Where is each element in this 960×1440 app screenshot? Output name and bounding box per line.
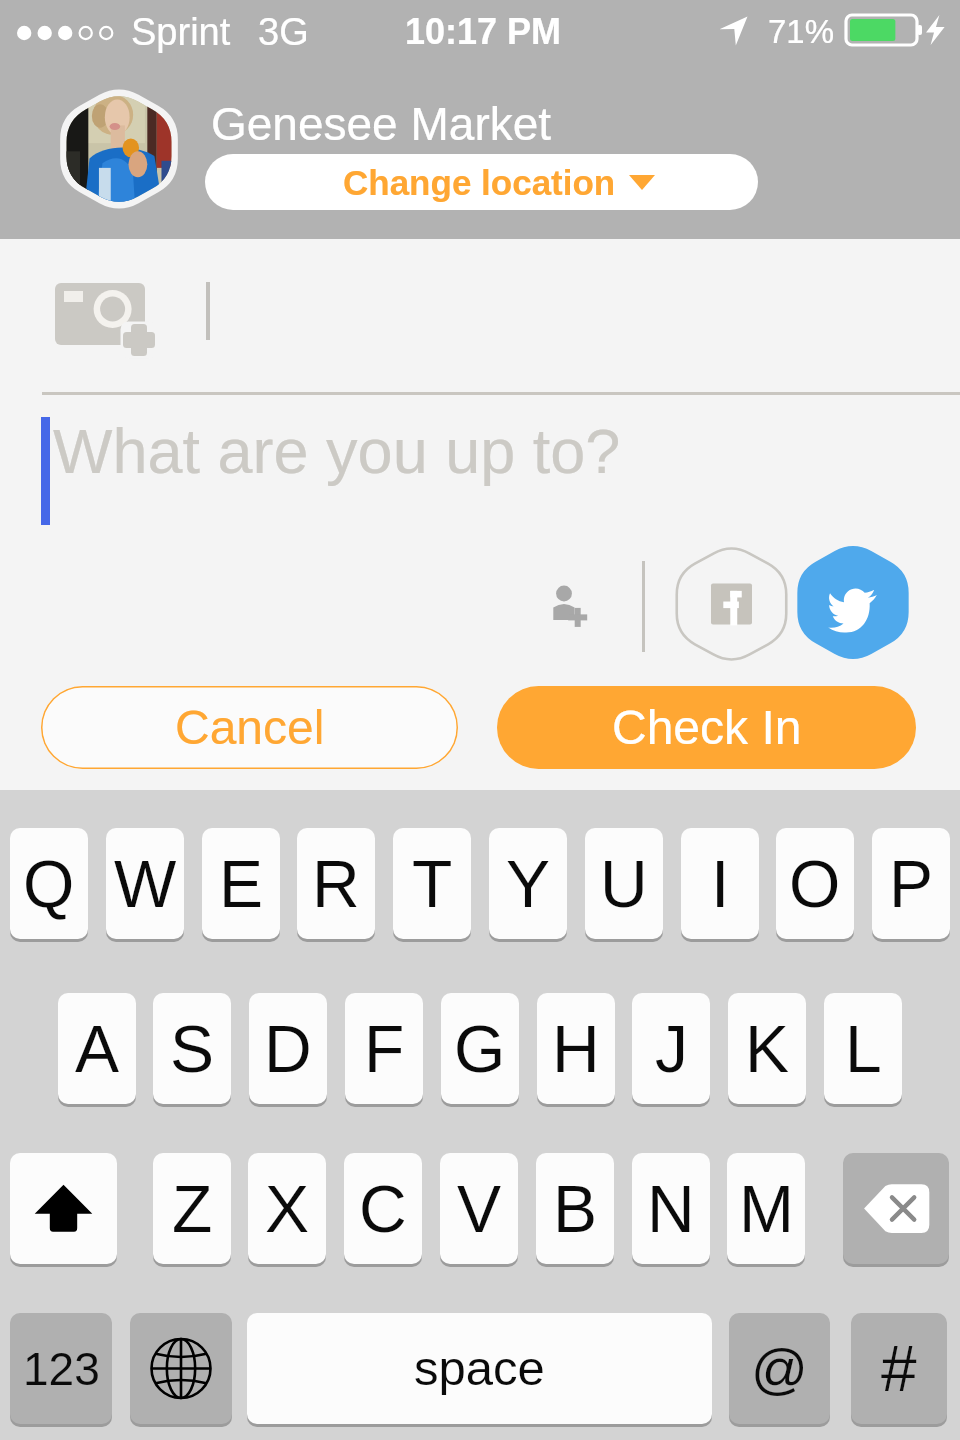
staticText: 10:17 PM: [405, 11, 562, 51]
staticText: D: [264, 1012, 312, 1086]
staticText: T: [412, 847, 453, 921]
button[interactable]: B: [536, 1153, 614, 1264]
staticText: L: [845, 1012, 882, 1086]
staticText: I: [711, 847, 730, 921]
staticText: Cancel: [175, 701, 325, 755]
staticText: P: [889, 847, 934, 921]
button[interactable]: K: [728, 993, 806, 1104]
button[interactable]: R: [297, 828, 375, 939]
button[interactable]: G: [441, 993, 519, 1104]
button[interactable]: X: [248, 1153, 326, 1264]
button[interactable]: space: [247, 1313, 712, 1424]
staticText: Q: [23, 847, 75, 921]
staticText: U: [600, 847, 648, 921]
staticText: X: [265, 1172, 310, 1246]
button[interactable]: Backspace: [843, 1153, 949, 1264]
button[interactable]: I: [681, 828, 759, 939]
staticText: R: [312, 847, 360, 921]
staticText: Sprint: [131, 11, 231, 53]
staticText: G: [454, 1012, 506, 1086]
button[interactable]: S: [153, 993, 231, 1104]
button[interactable]: E: [202, 828, 280, 939]
staticText: 123: [23, 1343, 100, 1394]
button[interactable]: Z: [153, 1153, 231, 1264]
staticText: Check In: [612, 701, 802, 755]
button[interactable]: Shift: [10, 1153, 117, 1264]
staticText: E: [219, 847, 264, 921]
button[interactable]: Change location: [205, 154, 758, 210]
staticText: C: [359, 1172, 407, 1246]
staticText: F: [364, 1012, 405, 1086]
button[interactable]: 123: [10, 1313, 112, 1424]
button[interactable]: N: [632, 1153, 710, 1264]
staticText: What are you up to?: [53, 416, 621, 486]
button[interactable]: Share to Twitter: [798, 547, 908, 658]
staticText: H: [552, 1012, 600, 1086]
staticText: Change location: [343, 163, 616, 202]
staticText: M: [739, 1172, 794, 1246]
button[interactable]: U: [585, 828, 663, 939]
button[interactable]: M: [727, 1153, 805, 1264]
staticText: space: [414, 1341, 545, 1396]
button[interactable]: L: [824, 993, 902, 1104]
staticText: S: [170, 1012, 215, 1086]
button[interactable]: H: [537, 993, 615, 1104]
staticText: J: [655, 1012, 688, 1086]
staticText: N: [647, 1172, 695, 1246]
button[interactable]: Check In: [497, 686, 916, 769]
button[interactable]: Message field, What are you up to?: [41, 399, 918, 559]
button[interactable]: O: [776, 828, 854, 939]
staticText: K: [745, 1012, 790, 1086]
staticText: 3G: [258, 11, 309, 53]
staticText: Genesee Market: [211, 98, 552, 149]
button[interactable]: Y: [489, 828, 567, 939]
staticText: A: [75, 1012, 120, 1086]
button[interactable]: Q: [10, 828, 88, 939]
button[interactable]: J: [632, 993, 710, 1104]
button[interactable]: P: [872, 828, 950, 939]
button[interactable]: W: [106, 828, 184, 939]
button[interactable]: A: [58, 993, 136, 1104]
staticText: Z: [172, 1172, 213, 1246]
staticText: W: [114, 847, 177, 921]
button[interactable]: V: [440, 1153, 518, 1264]
button[interactable]: Add photo: [50, 278, 154, 356]
staticText: @: [751, 1337, 808, 1400]
button[interactable]: Share to Facebook: [677, 548, 786, 660]
button[interactable]: #: [851, 1313, 947, 1424]
button[interactable]: @: [729, 1313, 830, 1424]
button[interactable]: Change keyboard language: [130, 1313, 232, 1424]
button[interactable]: Tag friends: [548, 575, 592, 625]
staticText: Y: [506, 847, 551, 921]
button[interactable]: T: [393, 828, 471, 939]
staticText: 71%: [768, 13, 835, 50]
staticText: V: [457, 1172, 502, 1246]
staticText: #: [881, 1333, 917, 1405]
button[interactable]: C: [344, 1153, 422, 1264]
staticText: O: [789, 847, 841, 921]
button[interactable]: Cancel: [41, 686, 458, 769]
button[interactable]: F: [345, 993, 423, 1104]
staticText: B: [553, 1172, 598, 1246]
button[interactable]: D: [249, 993, 327, 1104]
